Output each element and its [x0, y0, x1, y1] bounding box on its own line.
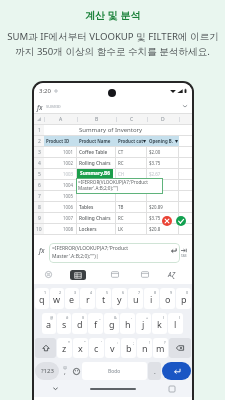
staticText: 0 — [186, 290, 189, 295]
button[interactable]: Functions — [166, 268, 178, 280]
button[interactable]: g — [104, 313, 119, 334]
staticText: n — [142, 342, 148, 354]
staticText: AⱿ — [168, 270, 176, 279]
staticText: & — [114, 315, 117, 320]
staticText: Opening B. — [149, 138, 173, 144]
staticText: 계산 및 분석 — [85, 8, 141, 22]
staticText: ' — [101, 340, 102, 345]
staticText: p — [181, 293, 187, 305]
button[interactable]: z — [57, 338, 72, 358]
button[interactable]: Backspace — [169, 338, 191, 358]
button[interactable]: Tab — [181, 248, 187, 258]
staticText: - — [131, 315, 133, 320]
button[interactable]: c — [89, 338, 104, 358]
button[interactable]: b — [121, 338, 136, 358]
button[interactable]: Cancel — [162, 216, 172, 226]
staticText: Coffee Table — [79, 149, 108, 156]
button[interactable]: k — [152, 313, 167, 334]
staticText: $20.89 — [149, 204, 163, 210]
button[interactable]: s — [57, 313, 71, 334]
staticText: 3 — [74, 290, 77, 295]
staticText: ; — [133, 340, 134, 345]
staticText: Product ID — [46, 138, 70, 144]
staticText: C — [130, 116, 134, 123]
staticText: ! — [149, 340, 150, 345]
button[interactable]: x — [73, 338, 88, 358]
staticText: 1004 — [63, 182, 74, 188]
staticText: # — [66, 315, 69, 320]
staticText: Product Name — [79, 138, 111, 144]
staticText: ( — [163, 315, 165, 320]
staticText: 1 — [44, 290, 47, 295]
staticText: Rolling Chairs — [79, 160, 111, 167]
staticText: 4 — [90, 290, 93, 295]
button[interactable]: l — [168, 313, 183, 334]
staticText: , — [64, 367, 66, 376]
staticText: Chairs — [79, 171, 94, 178]
staticText: v — [110, 342, 115, 354]
staticText: a — [46, 318, 52, 330]
staticText: u — [133, 293, 139, 305]
staticText: c — [94, 342, 99, 354]
button[interactable]: a — [42, 313, 56, 334]
button[interactable]: Expand formula bar — [180, 101, 190, 111]
staticText: ) — [179, 315, 181, 320]
button[interactable]: w — [50, 288, 64, 309]
staticText: _ — [99, 315, 101, 320]
button[interactable]: e — [65, 288, 79, 309]
staticText: fx — [37, 103, 43, 112]
button[interactable]: . — [148, 362, 161, 380]
staticText: D — [161, 116, 165, 123]
button[interactable]: y — [112, 288, 127, 309]
button[interactable]: t — [96, 288, 111, 309]
button[interactable]: n — [137, 338, 152, 358]
button[interactable]: h — [120, 313, 135, 334]
staticText: Rolling Chairs — [79, 215, 111, 222]
staticText: 5 — [38, 171, 41, 178]
button[interactable]: =IFERROR(VLOOKUP(A7;'Product Master'.A:B… — [49, 243, 180, 263]
button[interactable]: q — [35, 288, 49, 309]
button[interactable]: Space — [82, 362, 147, 380]
staticText: 9 — [38, 215, 41, 222]
button[interactable]: u — [128, 288, 143, 309]
staticText: q — [39, 293, 45, 305]
staticText: : — [117, 340, 118, 345]
staticText: Tables — [79, 204, 94, 211]
button[interactable]: o — [160, 288, 175, 309]
button[interactable]: , — [60, 362, 70, 380]
staticText: B — [95, 116, 99, 123]
button[interactable]: f — [88, 313, 103, 334]
button[interactable]: Accept — [176, 216, 186, 226]
staticText: RC — [118, 160, 124, 166]
staticText: TB — [118, 204, 124, 210]
staticText: 3:20 — [39, 87, 51, 95]
button[interactable]: Format — [42, 268, 54, 280]
staticText: 8 — [154, 290, 157, 295]
staticText: Bodo — [108, 368, 121, 375]
staticText: 1001 — [63, 149, 74, 155]
button[interactable]: v — [105, 338, 120, 358]
button[interactable]: i — [144, 288, 159, 309]
button[interactable]: Chart — [139, 268, 151, 280]
button[interactable]: Table — [70, 270, 86, 280]
button[interactable]: Emoji — [71, 362, 81, 380]
button[interactable]: ?123 — [35, 362, 59, 380]
button[interactable]: j — [136, 313, 151, 334]
staticText: o — [165, 293, 171, 305]
staticText: A — [59, 116, 63, 123]
button[interactable]: p — [176, 288, 191, 309]
staticText: CH — [118, 171, 125, 177]
staticText: m — [156, 342, 165, 354]
button[interactable]: r — [80, 288, 95, 309]
button[interactable]: Shift — [35, 338, 56, 358]
staticText: 6 — [38, 182, 41, 189]
staticText: $20.8 — [149, 226, 161, 232]
staticText: ☺ — [63, 365, 68, 370]
button[interactable]: m — [153, 338, 168, 358]
staticText: 10 — [36, 226, 42, 233]
staticText: @ — [50, 315, 54, 320]
staticText: SUM과 IF에서부터 VLOOKUP 및 FILTER에 이르기 — [7, 30, 219, 43]
button[interactable]: d — [72, 313, 87, 334]
button[interactable]: Sheet — [109, 268, 121, 280]
button[interactable]: Enter — [162, 362, 191, 380]
